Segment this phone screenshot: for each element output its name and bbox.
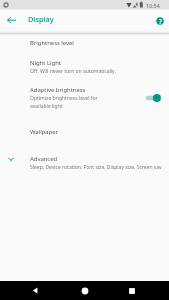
button[interactable]: Night Light <box>0 54 169 81</box>
button[interactable]: Home <box>73 281 96 300</box>
staticText: Off. Will never turn on automatically. <box>30 68 116 75</box>
staticText: Brightness level <box>30 39 74 47</box>
staticText: Wallpaper <box>30 128 59 136</box>
button[interactable]: Back <box>24 281 47 300</box>
button[interactable]: Navigate up <box>2 10 21 29</box>
button[interactable]: Help <box>150 11 169 30</box>
staticText: Advanced <box>30 155 58 163</box>
button[interactable]: Adaptive brightness toggle <box>143 92 165 104</box>
button[interactable]: Wallpaper <box>0 123 169 141</box>
staticText: Adaptive brightness <box>30 86 86 94</box>
staticText: Optimize brightness level for <box>30 95 98 102</box>
staticText: Display <box>28 14 54 24</box>
staticText: 10:54 <box>146 2 160 9</box>
staticText: Night Light <box>30 59 61 67</box>
staticText: available light <box>30 103 63 110</box>
staticText: ? <box>159 17 162 25</box>
button[interactable]: Adaptive brightness <box>0 81 169 116</box>
button[interactable]: Advanced <box>0 150 169 177</box>
button[interactable]: Recent apps <box>120 281 143 300</box>
button[interactable]: Brightness level <box>0 34 169 52</box>
staticText: Sleep, Device rotation, Font size, Displ… <box>30 164 162 171</box>
